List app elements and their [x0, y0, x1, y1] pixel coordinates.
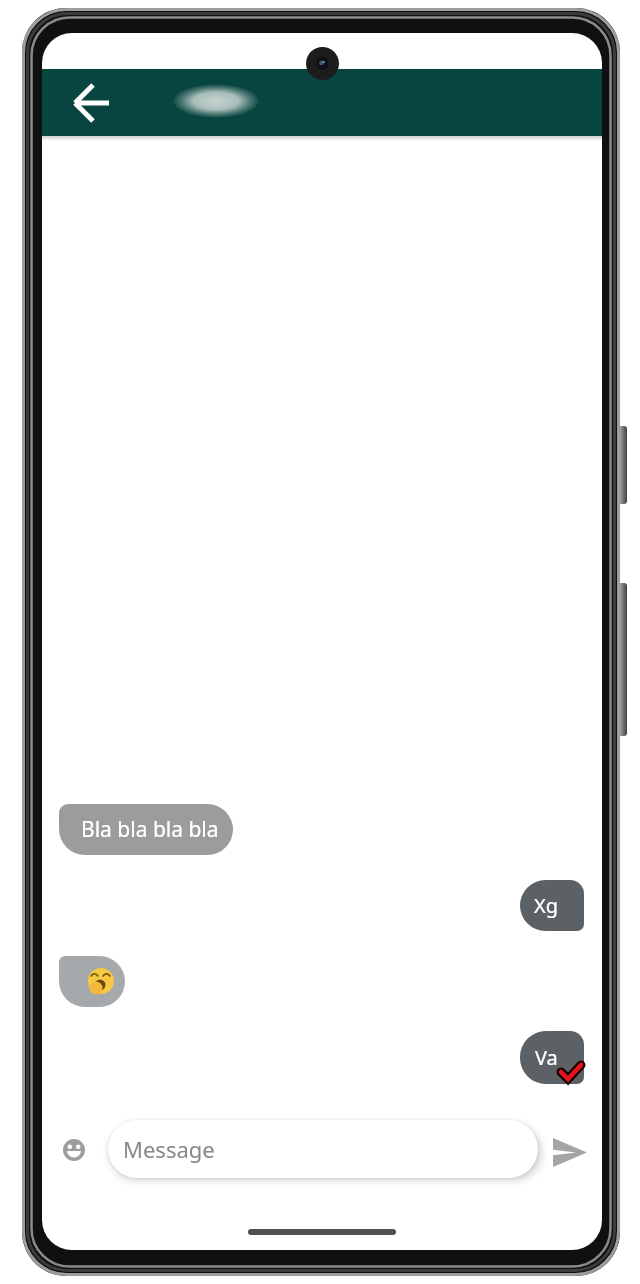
- button[interactable]: Message: [108, 1120, 538, 1178]
- button[interactable]: [59, 956, 125, 1007]
- button[interactable]: Bla bla bla bla: [59, 804, 233, 855]
- staticText: Bla bla bla bla: [81, 815, 219, 844]
- button[interactable]: [552, 1137, 588, 1168]
- button[interactable]: Va: [520, 1031, 584, 1084]
- staticText: Va: [535, 1044, 558, 1071]
- button[interactable]: Xg: [520, 880, 584, 931]
- staticText: Xg: [534, 892, 559, 919]
- button[interactable]: [42, 69, 602, 136]
- button[interactable]: [63, 1139, 85, 1161]
- staticText: Message: [123, 1134, 215, 1164]
- button[interactable]: [73, 84, 111, 122]
